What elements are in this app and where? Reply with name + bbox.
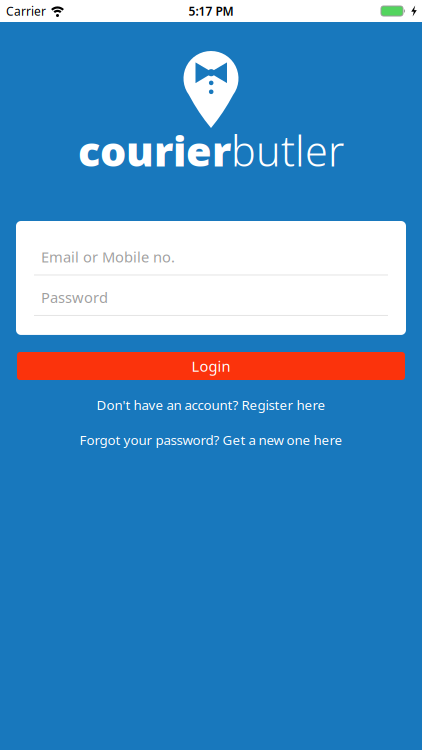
button[interactable]: Forgot your password? Get a new one here — [79, 431, 342, 449]
staticText: Forgot your password? Get a new one here — [79, 431, 342, 449]
button[interactable]: Password — [34, 287, 388, 316]
staticText: Password — [41, 287, 108, 307]
button[interactable]: Login — [17, 352, 405, 380]
staticText: Email or Mobile no. — [41, 247, 175, 266]
staticText: butler — [231, 123, 344, 178]
staticText: Carrier — [6, 3, 46, 19]
staticText: Don't have an account? Register here — [96, 396, 325, 414]
staticText: 5:17 PM — [188, 3, 233, 19]
staticText: courier — [78, 123, 231, 178]
button[interactable]: Email or Mobile no. — [34, 247, 388, 275]
button[interactable]: Don't have an account? Register here — [96, 396, 325, 414]
staticText: Login — [191, 356, 230, 376]
